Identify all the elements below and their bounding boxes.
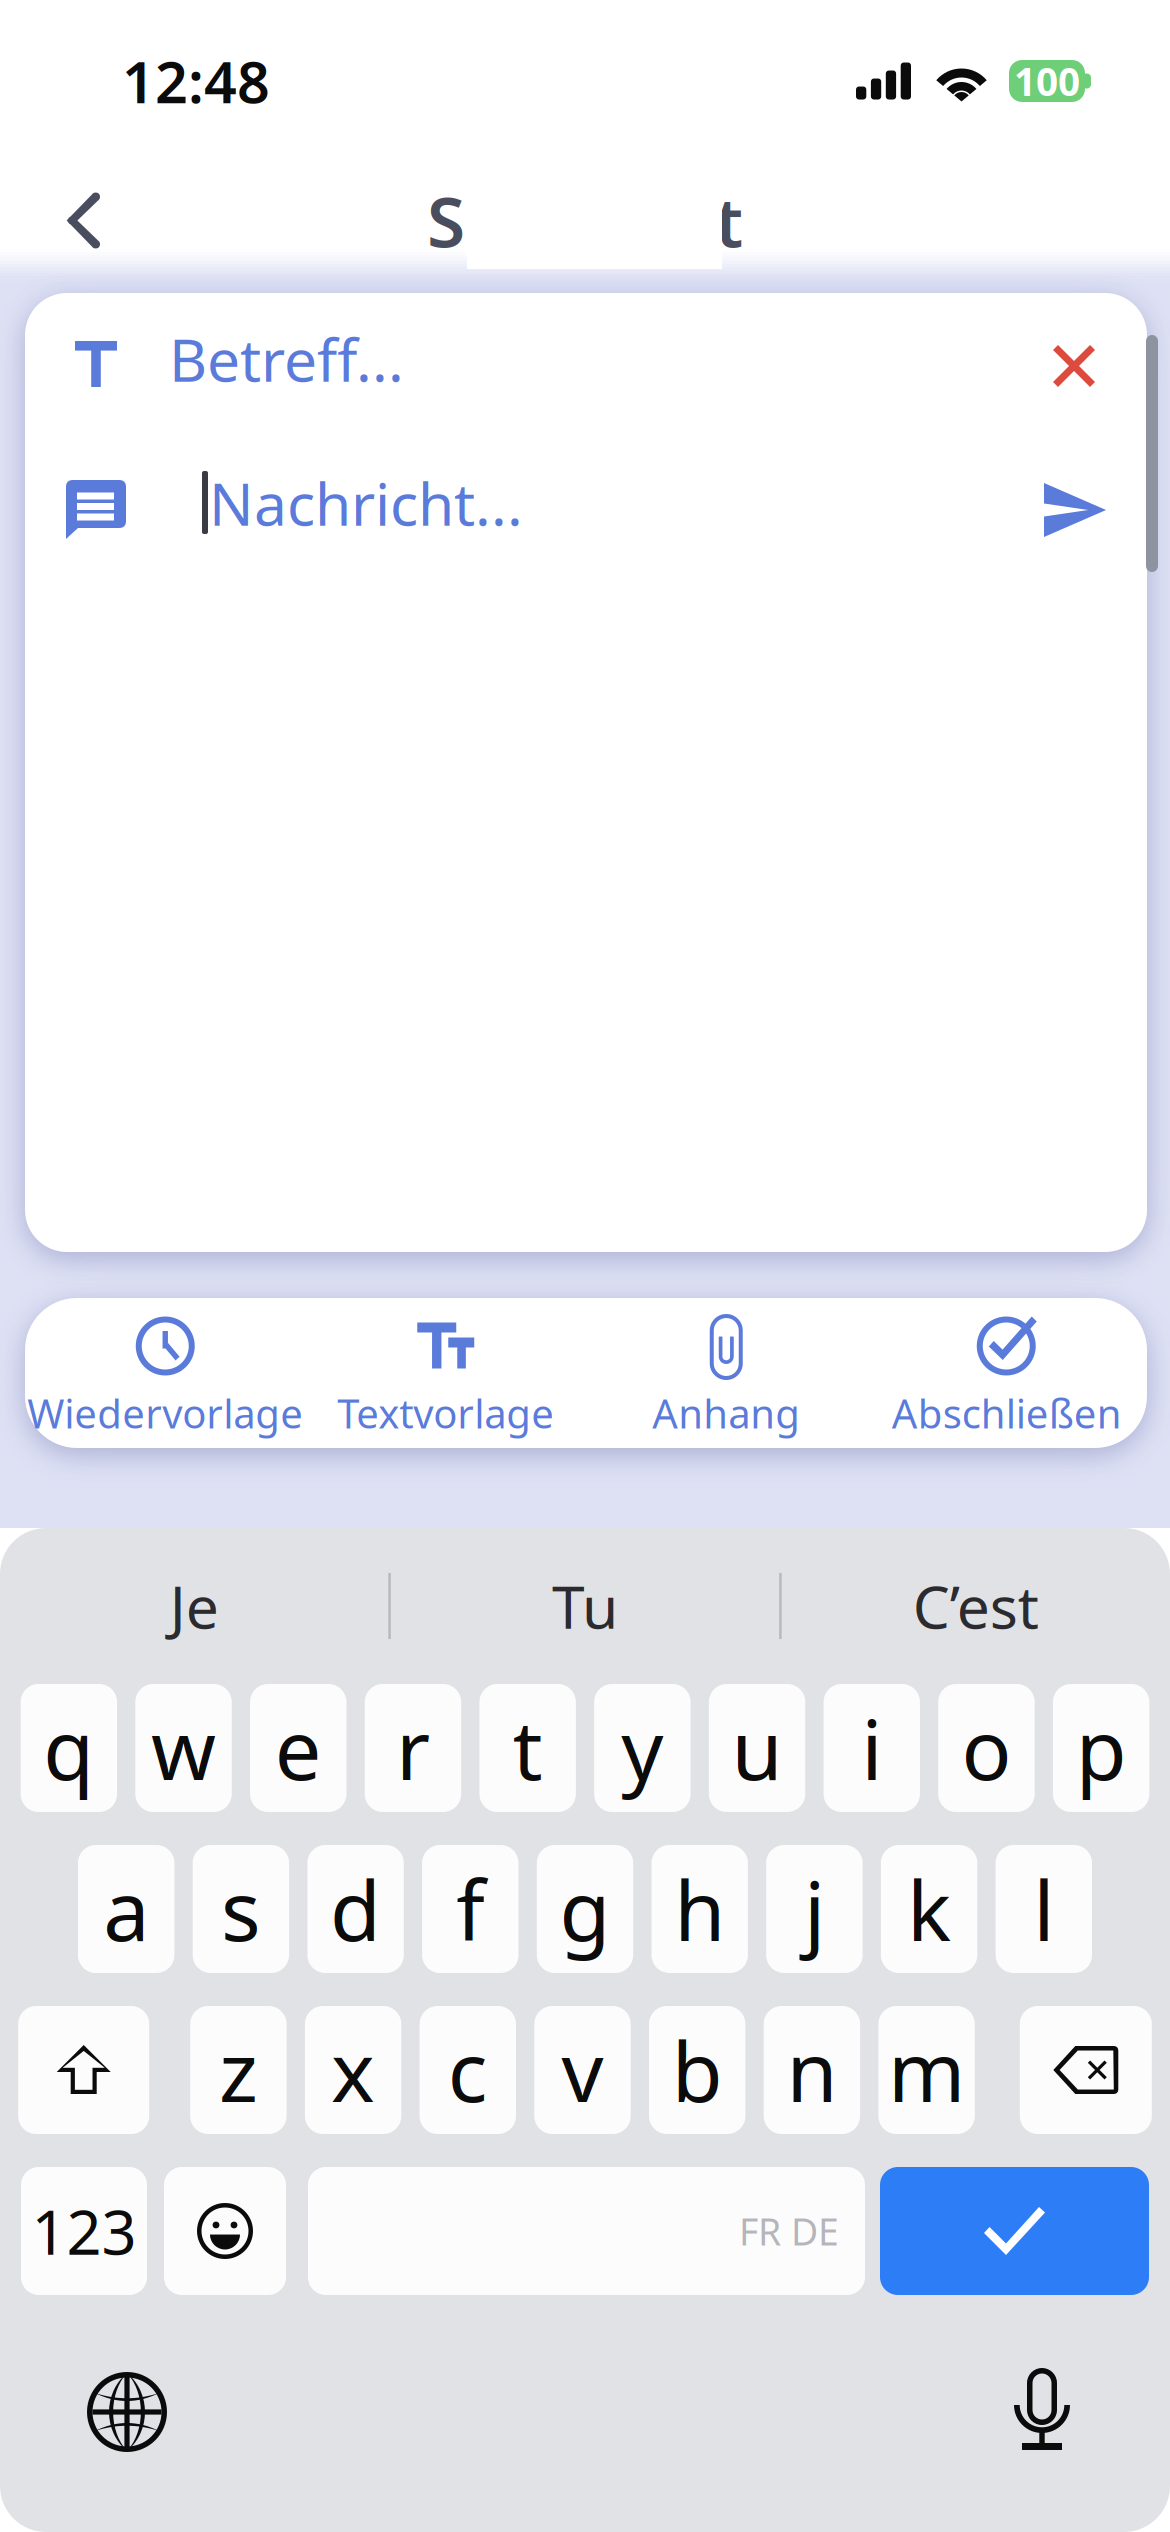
button[interactable]: o bbox=[938, 1684, 1035, 1812]
button[interactable]: x bbox=[305, 2006, 401, 2134]
button[interactable]: v bbox=[534, 2006, 631, 2134]
staticText: j bbox=[804, 1854, 825, 1964]
staticText: l bbox=[1033, 1854, 1054, 1964]
button[interactable]: k bbox=[881, 1845, 977, 1973]
button[interactable]: j bbox=[766, 1845, 863, 1973]
staticText: c bbox=[448, 2015, 488, 2125]
staticText: t bbox=[715, 174, 743, 267]
button[interactable]: l bbox=[996, 1845, 1092, 1973]
staticText: 100 bbox=[1014, 55, 1080, 107]
button[interactable] bbox=[18, 2006, 149, 2134]
staticText: s bbox=[221, 1854, 261, 1964]
staticText: o bbox=[961, 1693, 1011, 1803]
staticText: Abschließen bbox=[892, 1386, 1122, 1439]
button[interactable] bbox=[1020, 2006, 1152, 2134]
button[interactable]: m bbox=[878, 2006, 975, 2134]
staticText: 12:48 bbox=[122, 43, 270, 119]
staticText: g bbox=[559, 1854, 610, 1964]
button[interactable]: Textvorlage bbox=[305, 1298, 586, 1448]
button[interactable]: Return bbox=[880, 2167, 1149, 2295]
staticText: v bbox=[561, 2015, 603, 2125]
button[interactable]: Close bbox=[1027, 319, 1121, 413]
button[interactable]: b bbox=[649, 2006, 745, 2134]
button[interactable]: g bbox=[537, 1845, 633, 1973]
button[interactable]: a bbox=[78, 1845, 174, 1973]
staticText: z bbox=[219, 2015, 258, 2125]
button[interactable]: s bbox=[193, 1845, 289, 1973]
staticText: S bbox=[427, 174, 465, 267]
button[interactable]: w bbox=[135, 1684, 232, 1812]
button[interactable]: p bbox=[1053, 1684, 1149, 1812]
button[interactable]: z bbox=[190, 2006, 287, 2134]
button[interactable]: Back bbox=[0, 168, 140, 272]
staticText: b bbox=[672, 2015, 723, 2125]
staticText: 123 bbox=[31, 2190, 136, 2272]
staticText: a bbox=[103, 1854, 149, 1964]
staticText: q bbox=[43, 1693, 94, 1803]
button[interactable]: Change keyboard bbox=[67, 2352, 187, 2472]
staticText: t bbox=[513, 1693, 543, 1803]
staticText: f bbox=[456, 1854, 484, 1964]
button[interactable]: Abschließen bbox=[866, 1298, 1147, 1448]
button[interactable]: n bbox=[764, 2006, 860, 2134]
button[interactable]: 123 bbox=[21, 2167, 147, 2295]
staticText: Anhang bbox=[652, 1386, 800, 1439]
staticText: k bbox=[907, 1854, 951, 1964]
staticText: x bbox=[331, 2015, 375, 2125]
staticText: p bbox=[1076, 1693, 1127, 1803]
button[interactable]: q bbox=[21, 1684, 117, 1812]
button[interactable]: Space bbox=[308, 2167, 865, 2295]
button[interactable]: y bbox=[594, 1684, 691, 1812]
button[interactable]: Dictate bbox=[1007, 2349, 1103, 2475]
button[interactable]: t bbox=[479, 1684, 576, 1812]
button[interactable]: i bbox=[824, 1684, 920, 1812]
button[interactable] bbox=[164, 2167, 286, 2295]
staticText: m bbox=[888, 2015, 965, 2125]
staticText: y bbox=[621, 1693, 663, 1803]
staticText: i bbox=[861, 1693, 882, 1803]
staticText: w bbox=[151, 1693, 216, 1803]
button[interactable]: c bbox=[420, 2006, 516, 2134]
staticText: Je bbox=[170, 1567, 219, 1645]
button[interactable]: d bbox=[307, 1845, 404, 1973]
button[interactable]: Wiedervorlage bbox=[25, 1298, 305, 1448]
staticText: Tu bbox=[552, 1567, 618, 1645]
button[interactable]: Anhang bbox=[586, 1298, 866, 1448]
button[interactable]: f bbox=[422, 1845, 518, 1973]
staticText: e bbox=[275, 1693, 322, 1803]
staticText: r bbox=[396, 1693, 430, 1803]
staticText: h bbox=[674, 1854, 725, 1964]
staticText: n bbox=[786, 2015, 837, 2125]
button[interactable]: e bbox=[250, 1684, 346, 1812]
staticText: Nachricht... bbox=[209, 464, 523, 542]
staticText: C’est bbox=[913, 1567, 1039, 1645]
staticText: Betreff... bbox=[169, 320, 404, 398]
staticText: u bbox=[732, 1693, 783, 1803]
staticText: Textvorlage bbox=[337, 1386, 554, 1439]
button[interactable]: Send bbox=[1018, 457, 1132, 563]
staticText: FR DE bbox=[739, 2206, 839, 2256]
button[interactable]: u bbox=[709, 1684, 805, 1812]
button[interactable]: h bbox=[651, 1845, 748, 1973]
staticText: d bbox=[330, 1854, 381, 1964]
staticText: Wiedervorlage bbox=[27, 1386, 303, 1439]
button[interactable]: r bbox=[365, 1684, 461, 1812]
